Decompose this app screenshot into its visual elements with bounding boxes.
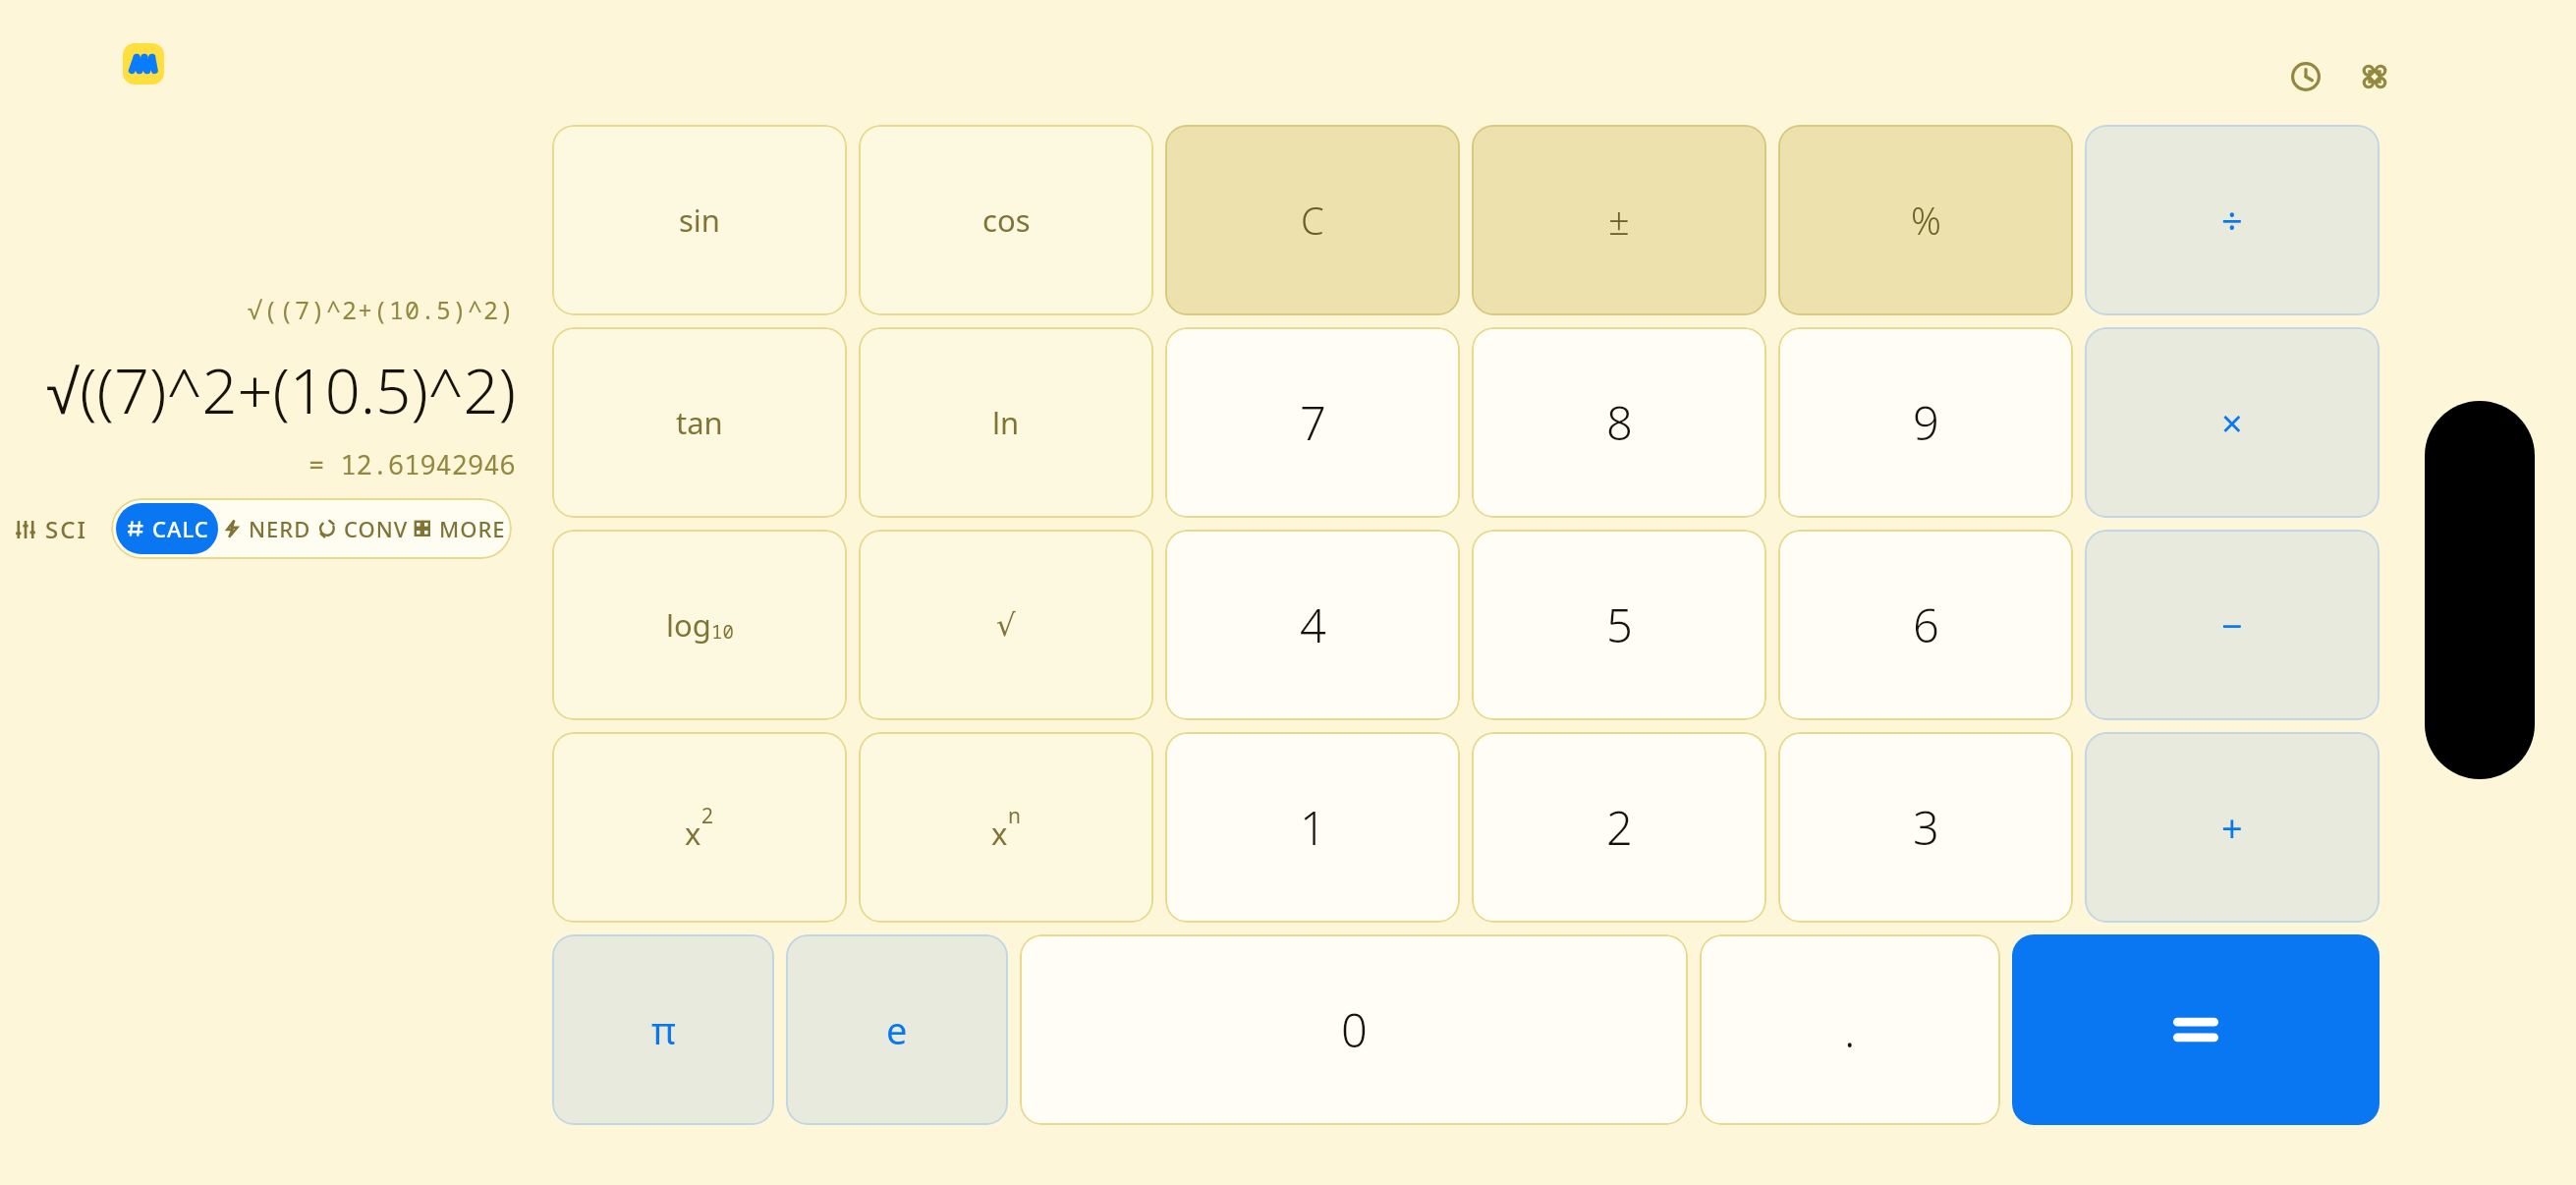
staticText: 6 xyxy=(1913,593,1939,656)
staticText: SCI xyxy=(45,513,87,545)
staticText: NERD xyxy=(249,514,311,543)
button[interactable]: 2 xyxy=(1472,732,1766,923)
staticText: 10 xyxy=(711,619,734,645)
staticText: C xyxy=(1301,195,1324,246)
button[interactable]: + xyxy=(2085,732,2380,923)
button[interactable]: 9 xyxy=(1778,327,2073,518)
staticText: n xyxy=(1008,802,1021,830)
staticText: x xyxy=(685,813,701,854)
staticText: π xyxy=(651,1004,676,1055)
button[interactable]: 8 xyxy=(1472,327,1766,518)
staticText: CALC xyxy=(152,514,209,543)
staticText: 5 xyxy=(1606,593,1633,656)
staticText: ln xyxy=(992,402,1020,443)
staticText: sin xyxy=(679,199,721,241)
staticText: x xyxy=(991,813,1008,854)
button[interactable]: CONV xyxy=(314,503,411,554)
staticText: cos xyxy=(982,199,1031,241)
button[interactable]: 4 xyxy=(1165,530,1460,720)
staticText: 0 xyxy=(1341,998,1368,1061)
staticText: 2 xyxy=(1606,796,1633,859)
button[interactable]: ± xyxy=(1472,125,1766,315)
button[interactable] xyxy=(2012,934,2380,1125)
button[interactable]: 3 xyxy=(1778,732,2073,923)
staticText: + xyxy=(2221,802,2243,853)
button[interactable]: . xyxy=(1700,934,2000,1125)
button[interactable]: 6 xyxy=(1778,530,2073,720)
button[interactable]: MORE xyxy=(411,503,507,554)
button[interactable]: Keyboard shortcuts xyxy=(2350,52,2399,101)
button[interactable]: e xyxy=(786,934,1008,1125)
button[interactable]: log xyxy=(552,530,847,720)
staticText: ± xyxy=(1608,195,1630,246)
staticText: = 12.61942946 xyxy=(308,446,516,482)
staticText: √((7)^2+(10.5)^2) xyxy=(45,348,516,432)
staticText: CONV xyxy=(344,514,409,543)
staticText: × xyxy=(2221,397,2243,448)
staticText: 9 xyxy=(1913,391,1939,454)
staticText: tan xyxy=(676,402,723,443)
button[interactable]: History xyxy=(2281,52,2330,101)
button[interactable]: SCI xyxy=(8,507,93,551)
button[interactable]: π xyxy=(552,934,774,1125)
button[interactable]: App logo xyxy=(123,43,164,85)
staticText: √ xyxy=(996,607,1016,643)
staticText: − xyxy=(2221,599,2243,650)
staticText: 3 xyxy=(1913,796,1939,859)
staticText: 1 xyxy=(1300,796,1326,859)
staticText: ÷ xyxy=(2221,195,2243,246)
button[interactable]: ln xyxy=(859,327,1153,518)
staticText: MORE xyxy=(439,514,506,543)
button[interactable]: 0 xyxy=(1020,934,1688,1125)
staticText: √((7)^2+(10.5)^2) xyxy=(248,293,516,326)
staticText: 2 xyxy=(701,802,714,830)
staticText: 7 xyxy=(1300,391,1326,454)
button[interactable]: 7 xyxy=(1165,327,1460,518)
staticText: % xyxy=(1911,195,1941,246)
button[interactable]: 5 xyxy=(1472,530,1766,720)
button[interactable]: x xyxy=(552,732,847,923)
button[interactable]: × xyxy=(2085,327,2380,518)
staticText: e xyxy=(886,1004,908,1055)
button[interactable]: ÷ xyxy=(2085,125,2380,315)
button[interactable]: tan xyxy=(552,327,847,518)
staticText: 8 xyxy=(1606,391,1633,454)
staticText: log xyxy=(666,604,711,646)
button[interactable]: C xyxy=(1165,125,1460,315)
button[interactable]: cos xyxy=(859,125,1153,315)
button[interactable]: sin xyxy=(552,125,847,315)
staticText: 4 xyxy=(1300,593,1326,656)
button[interactable]: √ xyxy=(859,530,1153,720)
button[interactable]: − xyxy=(2085,530,2380,720)
button[interactable]: 1 xyxy=(1165,732,1460,923)
button[interactable]: CALC xyxy=(116,503,218,554)
button[interactable]: x xyxy=(859,732,1153,923)
button[interactable]: % xyxy=(1778,125,2073,315)
button[interactable]: NERD xyxy=(218,503,314,554)
staticText: . xyxy=(1844,998,1856,1061)
